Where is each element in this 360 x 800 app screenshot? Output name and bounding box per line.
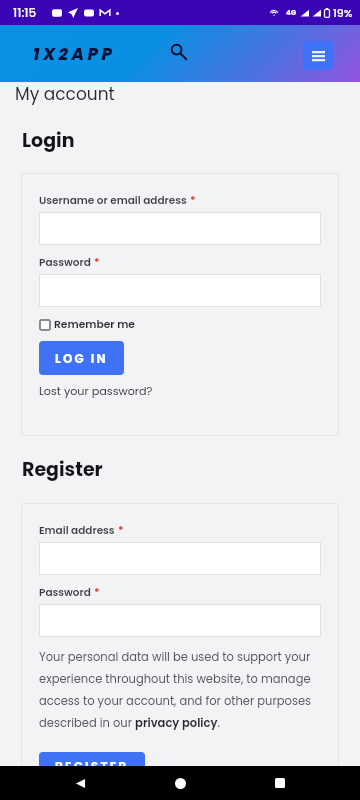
staticText: * [94, 585, 100, 600]
button[interactable]: Search [161, 34, 197, 70]
staticText: Username or email address [39, 193, 187, 208]
button[interactable]: Recents [260, 766, 300, 800]
button[interactable] [39, 542, 321, 575]
staticText: Password [39, 255, 91, 270]
staticText: * [118, 523, 124, 538]
staticText: Your personal data will be used to suppo… [39, 649, 321, 731]
staticText: Login [22, 127, 75, 154]
button[interactable]: Back [60, 766, 100, 800]
staticText: Email address [39, 523, 115, 538]
staticText: 11:15 [13, 4, 37, 21]
staticText: My account [15, 82, 115, 106]
button[interactable] [39, 274, 321, 307]
staticText: Remember me [54, 317, 135, 332]
button[interactable] [39, 212, 321, 245]
staticText: Password [39, 585, 91, 600]
staticText: Register [22, 456, 103, 483]
staticText: 1X2APP [33, 43, 116, 66]
button[interactable]: Menu [303, 41, 333, 70]
button[interactable]: Home [160, 766, 200, 800]
button[interactable]: Lost your password? [39, 383, 153, 399]
staticText: 4G [286, 8, 297, 18]
button[interactable]: LOG IN [39, 341, 124, 375]
button[interactable]: REGISTER [39, 752, 145, 780]
button[interactable] [39, 604, 321, 637]
button[interactable]: Remember me [39, 317, 135, 332]
staticText: * [94, 255, 100, 270]
staticText: REGISTER [55, 758, 129, 775]
staticText: 19% [333, 5, 353, 20]
staticText: * [190, 193, 196, 208]
staticText: LOG IN [55, 350, 108, 367]
